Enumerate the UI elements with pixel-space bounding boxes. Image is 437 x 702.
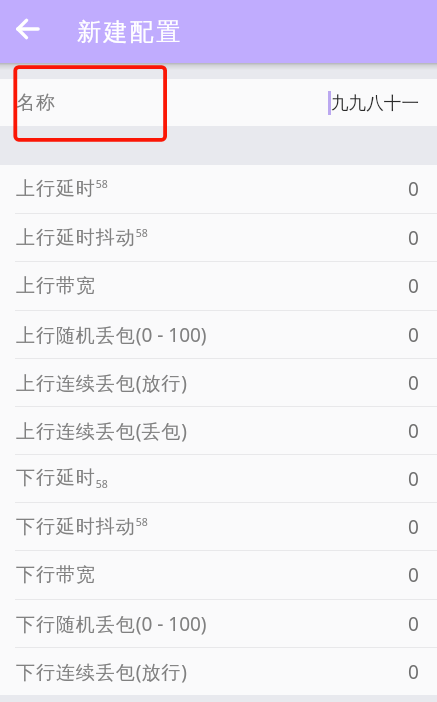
button[interactable]: 下行随机丢包(0 - 100) [0,600,437,647]
staticText: 上行延时58 [16,177,108,201]
staticText: 新建配置 [77,17,183,47]
button[interactable]: 下行延时抖动58 [0,503,437,550]
button[interactable]: Back [4,5,52,53]
staticText: 0 [408,176,419,202]
staticText: 0 [408,562,419,588]
staticText: 九九八十一 [331,92,419,114]
staticText: 下行延时抖动58 [16,515,148,539]
staticText: 0 [408,273,419,299]
staticText: 上行延时抖动58 [16,226,148,250]
staticText: 下行随机丢包(0 - 100) [16,611,207,637]
staticText: 0 [408,370,419,396]
staticText: 0 [408,322,419,348]
staticText: 下行延时58 [16,466,108,491]
staticText: 0 [408,466,419,492]
staticText: 下行带宽 [16,563,96,587]
staticText: 0 [408,514,419,540]
button[interactable]: 下行连续丢包(放行) [0,648,437,695]
staticText: 下行连续丢包(放行) [16,659,188,685]
staticText: 0 [408,611,419,637]
staticText: 0 [408,659,419,685]
staticText: 上行连续丢包(丢包) [16,418,188,444]
staticText: 上行带宽 [16,274,96,298]
button[interactable]: 上行连续丢包(放行) [0,359,437,406]
button[interactable]: 上行随机丢包(0 - 100) [0,311,437,358]
staticText: 上行随机丢包(0 - 100) [16,322,207,348]
staticText: 0 [408,225,419,251]
button[interactable]: 下行延时58 [0,455,437,502]
staticText: 上行连续丢包(放行) [16,370,188,396]
button[interactable]: 上行连续丢包(丢包) [0,407,437,454]
button[interactable]: 名称 [0,79,437,126]
button[interactable]: 上行带宽 [0,262,437,310]
button[interactable]: 下行带宽 [0,551,437,599]
staticText: 名称 [16,91,56,115]
button[interactable]: 上行延时抖动58 [0,214,437,261]
staticText: 0 [408,418,419,444]
button[interactable]: 上行延时58 [0,165,437,213]
